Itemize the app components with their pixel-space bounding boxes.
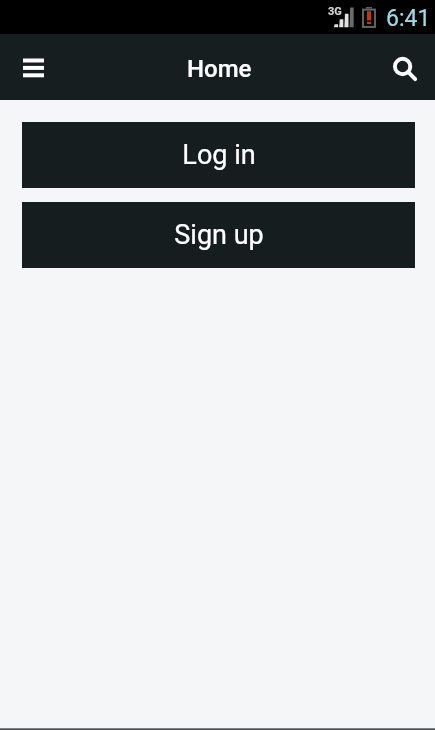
staticText: Home xyxy=(187,55,252,83)
staticText: Log in xyxy=(182,139,256,171)
staticText: 6:41 xyxy=(386,5,431,32)
staticText: 3G xyxy=(328,5,342,18)
button[interactable]: Menu xyxy=(0,34,66,100)
button[interactable]: Log in xyxy=(22,122,415,188)
button[interactable]: Search xyxy=(369,34,435,100)
button[interactable]: Sign up xyxy=(22,202,415,268)
staticText: Sign up xyxy=(174,219,264,251)
